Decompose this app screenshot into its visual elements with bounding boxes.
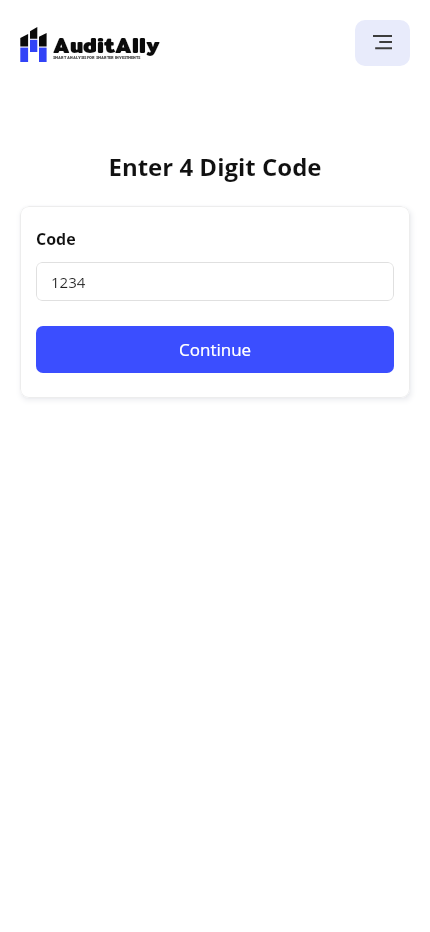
staticText: Code <box>36 228 76 250</box>
staticText: Enter 4 Digit Code <box>0 150 430 183</box>
staticText: Continue <box>179 338 252 361</box>
button[interactable]: Continue <box>36 326 394 373</box>
button[interactable]: 1234 <box>36 262 394 301</box>
button[interactable]: Menu <box>355 20 410 66</box>
staticText: 1234 <box>51 272 86 292</box>
